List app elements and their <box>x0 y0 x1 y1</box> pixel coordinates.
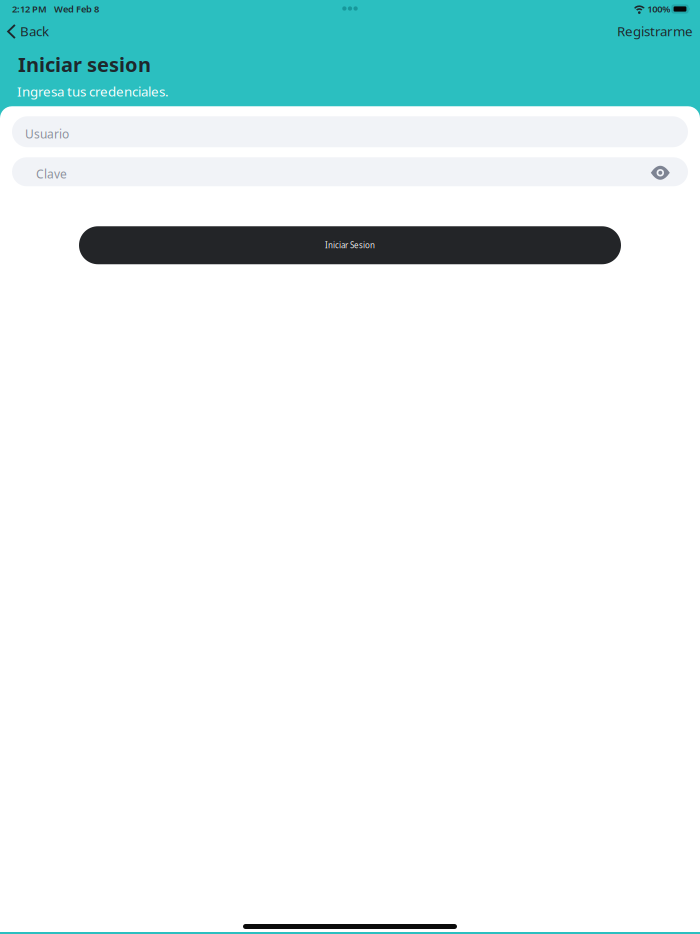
staticText: Iniciar sesion <box>18 51 151 78</box>
staticText: Iniciar Sesion <box>325 240 375 251</box>
staticText: Registrarme <box>617 22 693 40</box>
button[interactable]: Iniciar Sesion <box>79 226 621 264</box>
button[interactable]: Registrarme <box>611 16 699 47</box>
staticText: Usuario <box>25 126 69 142</box>
button[interactable]: Back <box>1 16 55 47</box>
staticText: 2:12 PM <box>12 3 47 15</box>
staticText: 100% <box>647 3 670 15</box>
button[interactable]: Clave <box>12 157 639 186</box>
button[interactable]: Usuario <box>12 116 688 147</box>
staticText: Back <box>20 22 49 40</box>
staticText: Ingresa tus credenciales. <box>17 83 169 100</box>
staticText: Wed Feb 8 <box>54 3 99 15</box>
button[interactable]: Show password <box>639 158 688 186</box>
staticText: Clave <box>36 166 67 182</box>
